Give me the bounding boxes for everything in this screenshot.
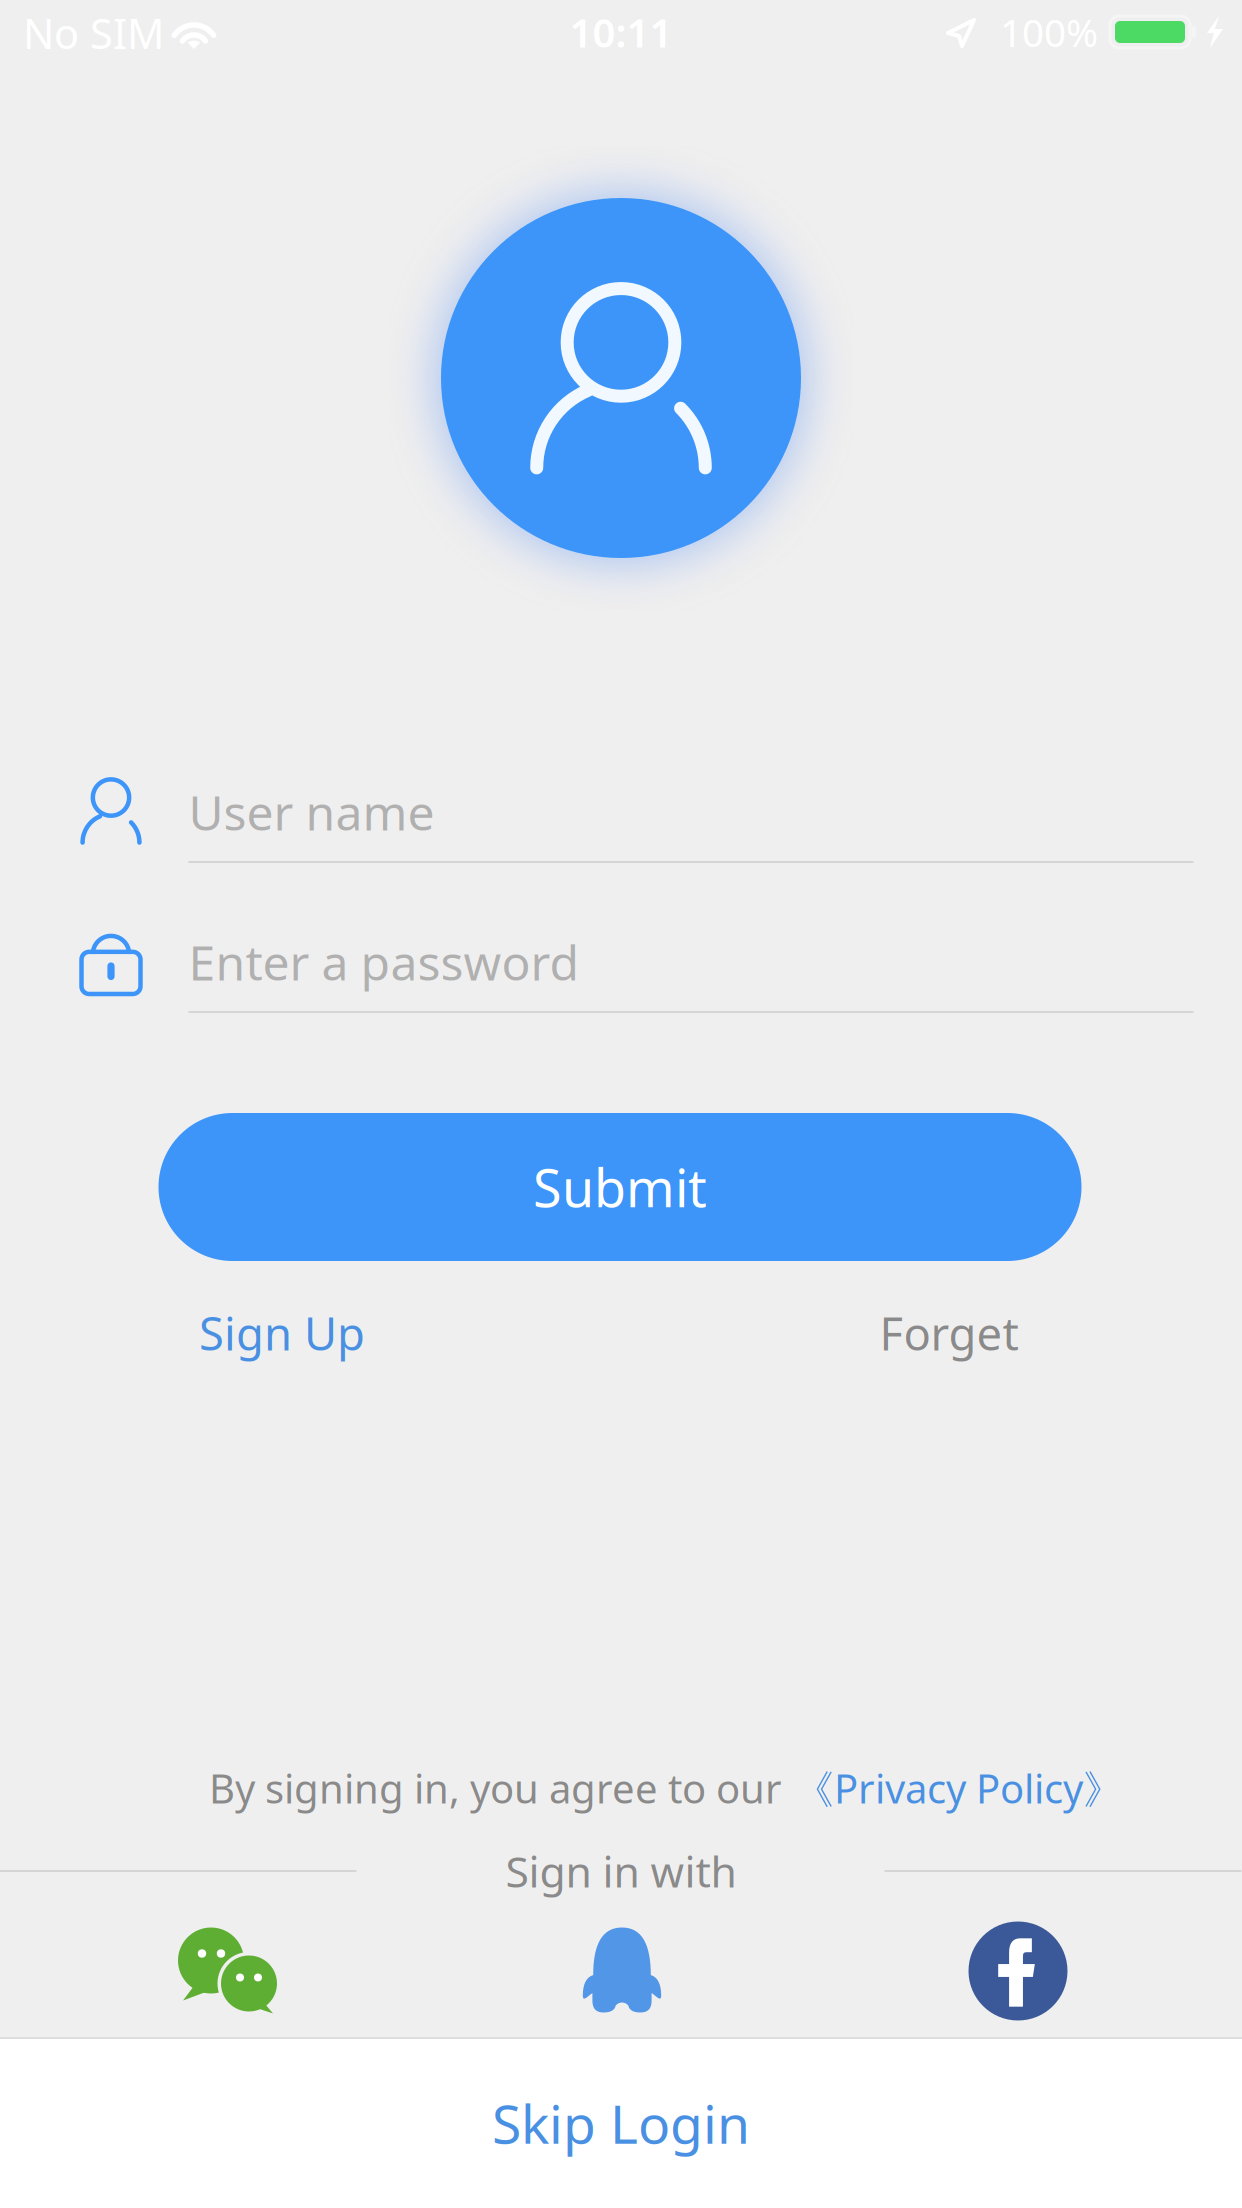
button[interactable]: Sign in with WeChat: [177, 1927, 277, 2012]
staticText: 10:11: [569, 5, 672, 58]
button[interactable]: Submit: [158, 1113, 1081, 1261]
button[interactable]: 《Privacy Policy》: [782, 1761, 1123, 1815]
staticText: Enter a password: [188, 930, 579, 994]
button[interactable]: Sign in with QQ: [582, 1927, 662, 2012]
staticText: User name: [188, 780, 434, 844]
staticText: Sign Up: [199, 1303, 365, 1363]
staticText: Submit: [533, 1152, 707, 1222]
staticText: 100%: [1000, 6, 1098, 58]
staticText: Forget: [879, 1303, 1018, 1363]
staticText: By signing in, you agree to our: [209, 1761, 782, 1814]
staticText: 《Privacy Policy》: [794, 1761, 1123, 1815]
button[interactable]: Skip Login: [0, 2038, 1242, 2208]
button[interactable]: Forget: [879, 1303, 1018, 1363]
staticText: Skip Login: [492, 2088, 750, 2158]
button[interactable]: Sign in with Facebook: [968, 1921, 1067, 2020]
staticText: No SIM: [23, 6, 164, 60]
staticText: Sign in with: [505, 1843, 736, 1899]
button[interactable]: Sign Up: [199, 1303, 365, 1363]
